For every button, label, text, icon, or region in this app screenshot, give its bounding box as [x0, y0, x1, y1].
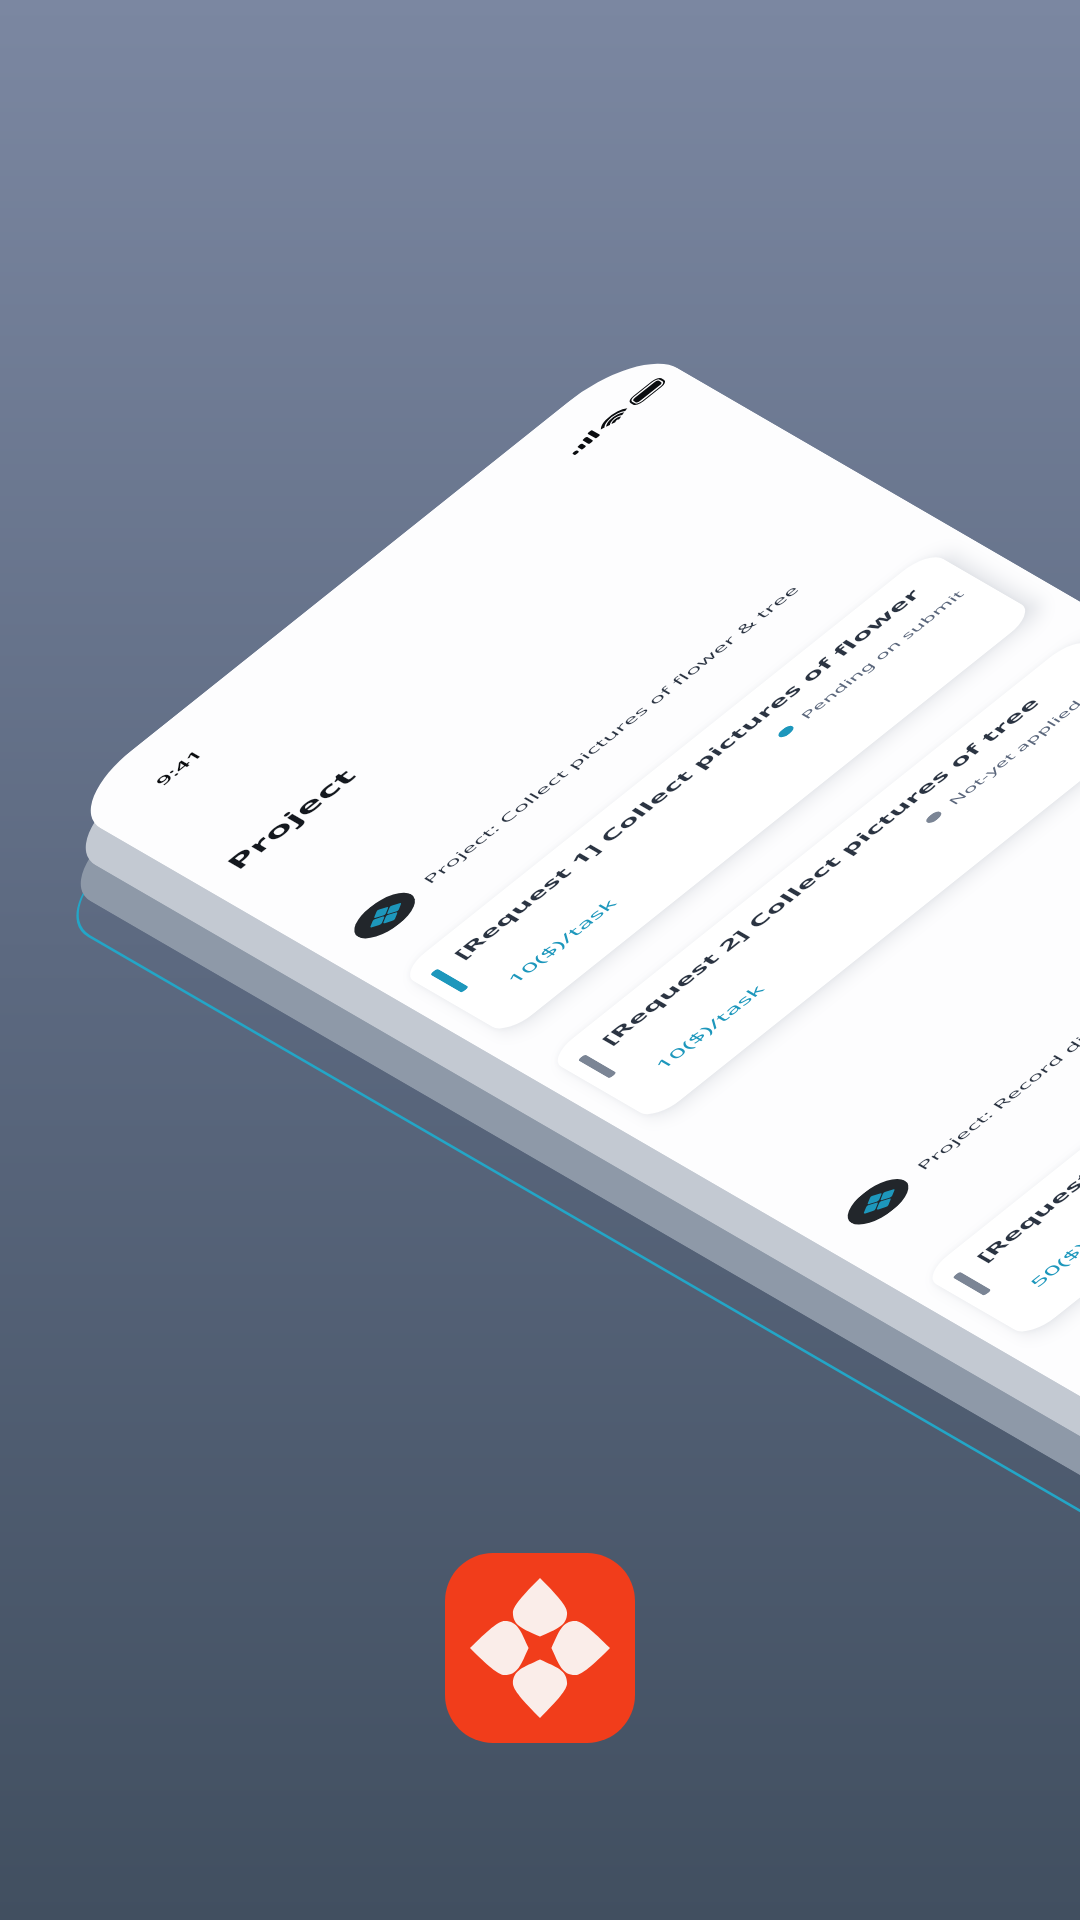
staticText: [Request 2] Collect pictures of tree — [566, 688, 1075, 1054]
staticText: [Request 1] Collect pictures of flower — [416, 580, 958, 968]
staticText: Project — [209, 757, 371, 881]
staticText: Project: Collect pictures of flower & tr… — [393, 578, 830, 891]
staticText: Pending on submit — [785, 584, 978, 725]
staticText: 50($)/task — [1017, 1193, 1080, 1295]
staticText: [Request 1] Record distance of walking — [937, 863, 1080, 1271]
staticText: Project: Record distance of walking — [890, 899, 1080, 1177]
staticText: Not-yet applied — [935, 693, 1080, 811]
staticText: 10($)/task — [495, 890, 629, 992]
button[interactable]: [Request 2] Collect pictures of tree — [511, 605, 1080, 1151]
staticText: 9:41 — [147, 742, 210, 793]
button[interactable]: [Request 1] Record distance of walking — [885, 823, 1080, 1369]
button[interactable]: [Request 1] Collect pictures of flower — [363, 520, 1072, 1066]
button[interactable]: Open app — [445, 1553, 635, 1743]
staticText: 10($)/task — [643, 976, 777, 1077]
